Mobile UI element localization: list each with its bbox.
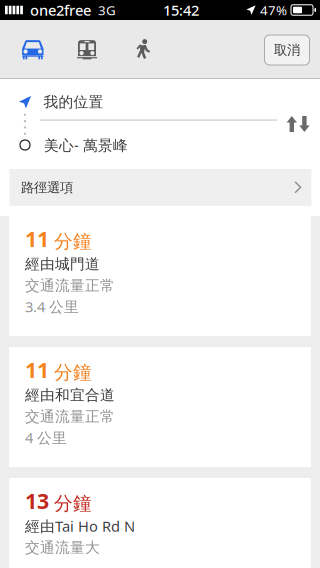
button[interactable]: 13 — [9, 478, 311, 568]
button[interactable]: 我的位置 — [0, 87, 320, 117]
button[interactable]: 路徑選項 — [9, 169, 311, 206]
staticText: 47% — [260, 1, 287, 19]
button[interactable]: Swap start and destination — [280, 108, 316, 140]
staticText: 交通流量正常 — [25, 276, 115, 294]
staticText: 11 — [25, 356, 49, 384]
staticText: 路徑選項 — [21, 179, 73, 196]
staticText: 經由Tai Ho Rd N — [25, 516, 135, 536]
staticText: 我的位置 — [43, 93, 103, 111]
button[interactable]: 11 — [9, 216, 311, 336]
staticText: 美心- 萬景峰 — [44, 135, 128, 155]
staticText: 3.4 公里 — [25, 297, 79, 316]
staticText: 分鐘 — [54, 361, 92, 384]
button[interactable]: Walking directions — [116, 23, 170, 75]
staticText: 取消 — [274, 42, 300, 58]
button[interactable]: 美心- 萬景峰 — [0, 130, 320, 160]
button[interactable]: Driving directions — [6, 23, 60, 75]
staticText: 11 — [25, 225, 49, 253]
staticText: 交通流量大 — [25, 538, 100, 556]
button[interactable]: Transit directions — [60, 23, 114, 75]
staticText: 分鐘 — [54, 492, 92, 515]
button[interactable]: 取消 — [264, 35, 309, 65]
staticText: 經由城門道 — [25, 255, 100, 273]
staticText: 13 — [25, 487, 49, 515]
staticText: 15:42 — [163, 0, 199, 20]
staticText: 4 公里 — [25, 428, 67, 447]
button[interactable]: 11 — [9, 347, 311, 467]
staticText: one2free — [30, 0, 91, 20]
staticText: 交通流量正常 — [25, 407, 115, 425]
staticText: 分鐘 — [54, 230, 92, 253]
staticText: 經由和宜合道 — [25, 386, 115, 404]
staticText: 3G — [98, 1, 116, 19]
